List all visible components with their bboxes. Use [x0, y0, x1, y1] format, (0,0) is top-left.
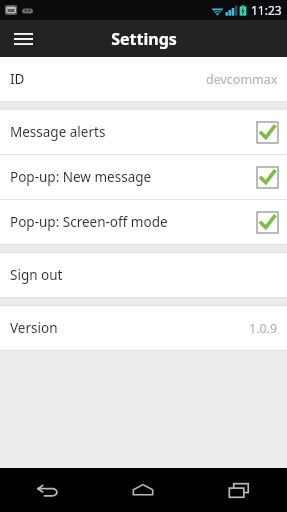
button[interactable]: Pop-up: New message: [0, 155, 287, 199]
staticText: ID: [10, 70, 206, 88]
button[interactable]: Recent apps: [191, 468, 287, 512]
staticText: 1.0.9: [249, 320, 278, 337]
button[interactable]: Pop-up: Screen-off mode: [0, 200, 287, 244]
button[interactable]: Home: [95, 468, 191, 512]
button[interactable]: Message alerts: [0, 110, 287, 154]
staticText: Sign out: [10, 266, 278, 284]
staticText: Pop-up: New message: [10, 168, 257, 186]
staticText: devcommax: [206, 71, 278, 88]
button[interactable]: Open navigation menu: [0, 20, 46, 57]
button[interactable]: ID: [0, 57, 287, 101]
button[interactable]: Sign out: [0, 253, 287, 297]
staticText: Settings: [111, 28, 177, 50]
staticText: Pop-up: Screen-off mode: [10, 213, 257, 231]
staticText: Message alerts: [10, 123, 257, 141]
staticText: Version: [10, 319, 249, 337]
staticText: 11:23: [251, 2, 282, 18]
button[interactable]: Back: [0, 468, 95, 512]
button[interactable]: Version: [0, 306, 287, 350]
